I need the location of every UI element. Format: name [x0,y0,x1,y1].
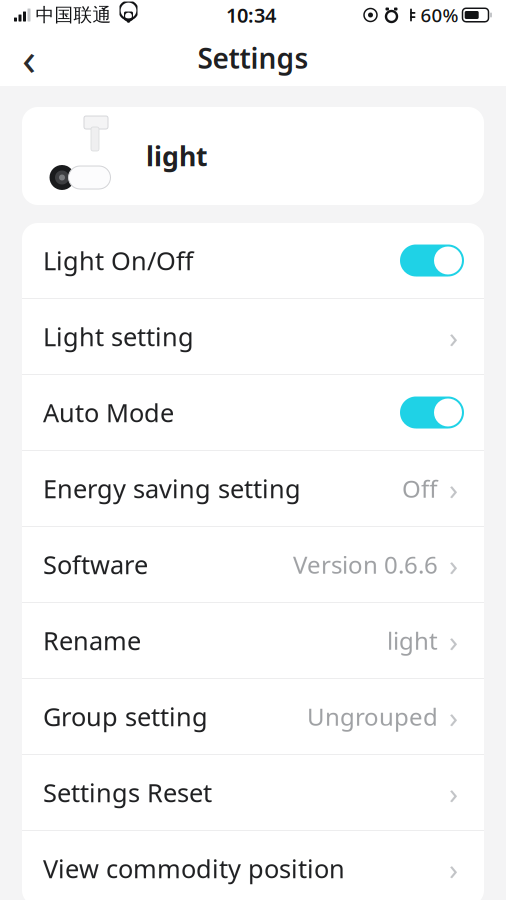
staticText: Ungrouped [307,701,438,732]
button[interactable]: light [22,107,484,205]
button[interactable]: Auto Mode [22,375,484,451]
staticText: Light On/Off [43,244,193,277]
staticText: › [449,317,458,356]
button[interactable]: Light On/Off [22,223,484,299]
staticText: 中国联通 [35,3,111,26]
button[interactable]: Back [6,35,52,81]
staticText: 60% [420,3,458,27]
staticText: Settings [197,39,308,77]
staticText: › [449,697,458,736]
button[interactable]: View commodity position [22,831,484,900]
staticText: › [449,469,458,508]
staticText: › [449,545,458,584]
button[interactable]: Light setting [22,299,484,375]
button[interactable]: Rename [22,603,484,679]
staticText: View commodity position [43,852,345,885]
button[interactable]: Settings Reset [22,755,484,831]
button[interactable]: Energy saving setting [22,451,484,527]
staticText: 10:34 [226,2,276,28]
staticText: Version 0.6.6 [293,549,438,580]
staticText: › [449,849,458,888]
staticText: light [146,138,208,174]
staticText: light [387,625,438,656]
staticText: Auto Mode [43,396,174,429]
staticText: Group setting [43,700,208,733]
staticText: › [449,773,458,812]
button[interactable]: Group setting [22,679,484,755]
staticText: Off [402,473,438,504]
button[interactable]: Software [22,527,484,603]
staticText: › [449,621,458,660]
staticText: Software [43,548,148,581]
staticText: Settings Reset [43,776,212,809]
staticText: Light setting [43,320,194,353]
staticText: Rename [43,624,141,657]
staticText: Energy saving setting [43,472,301,505]
staticText: ‹ [22,28,36,88]
